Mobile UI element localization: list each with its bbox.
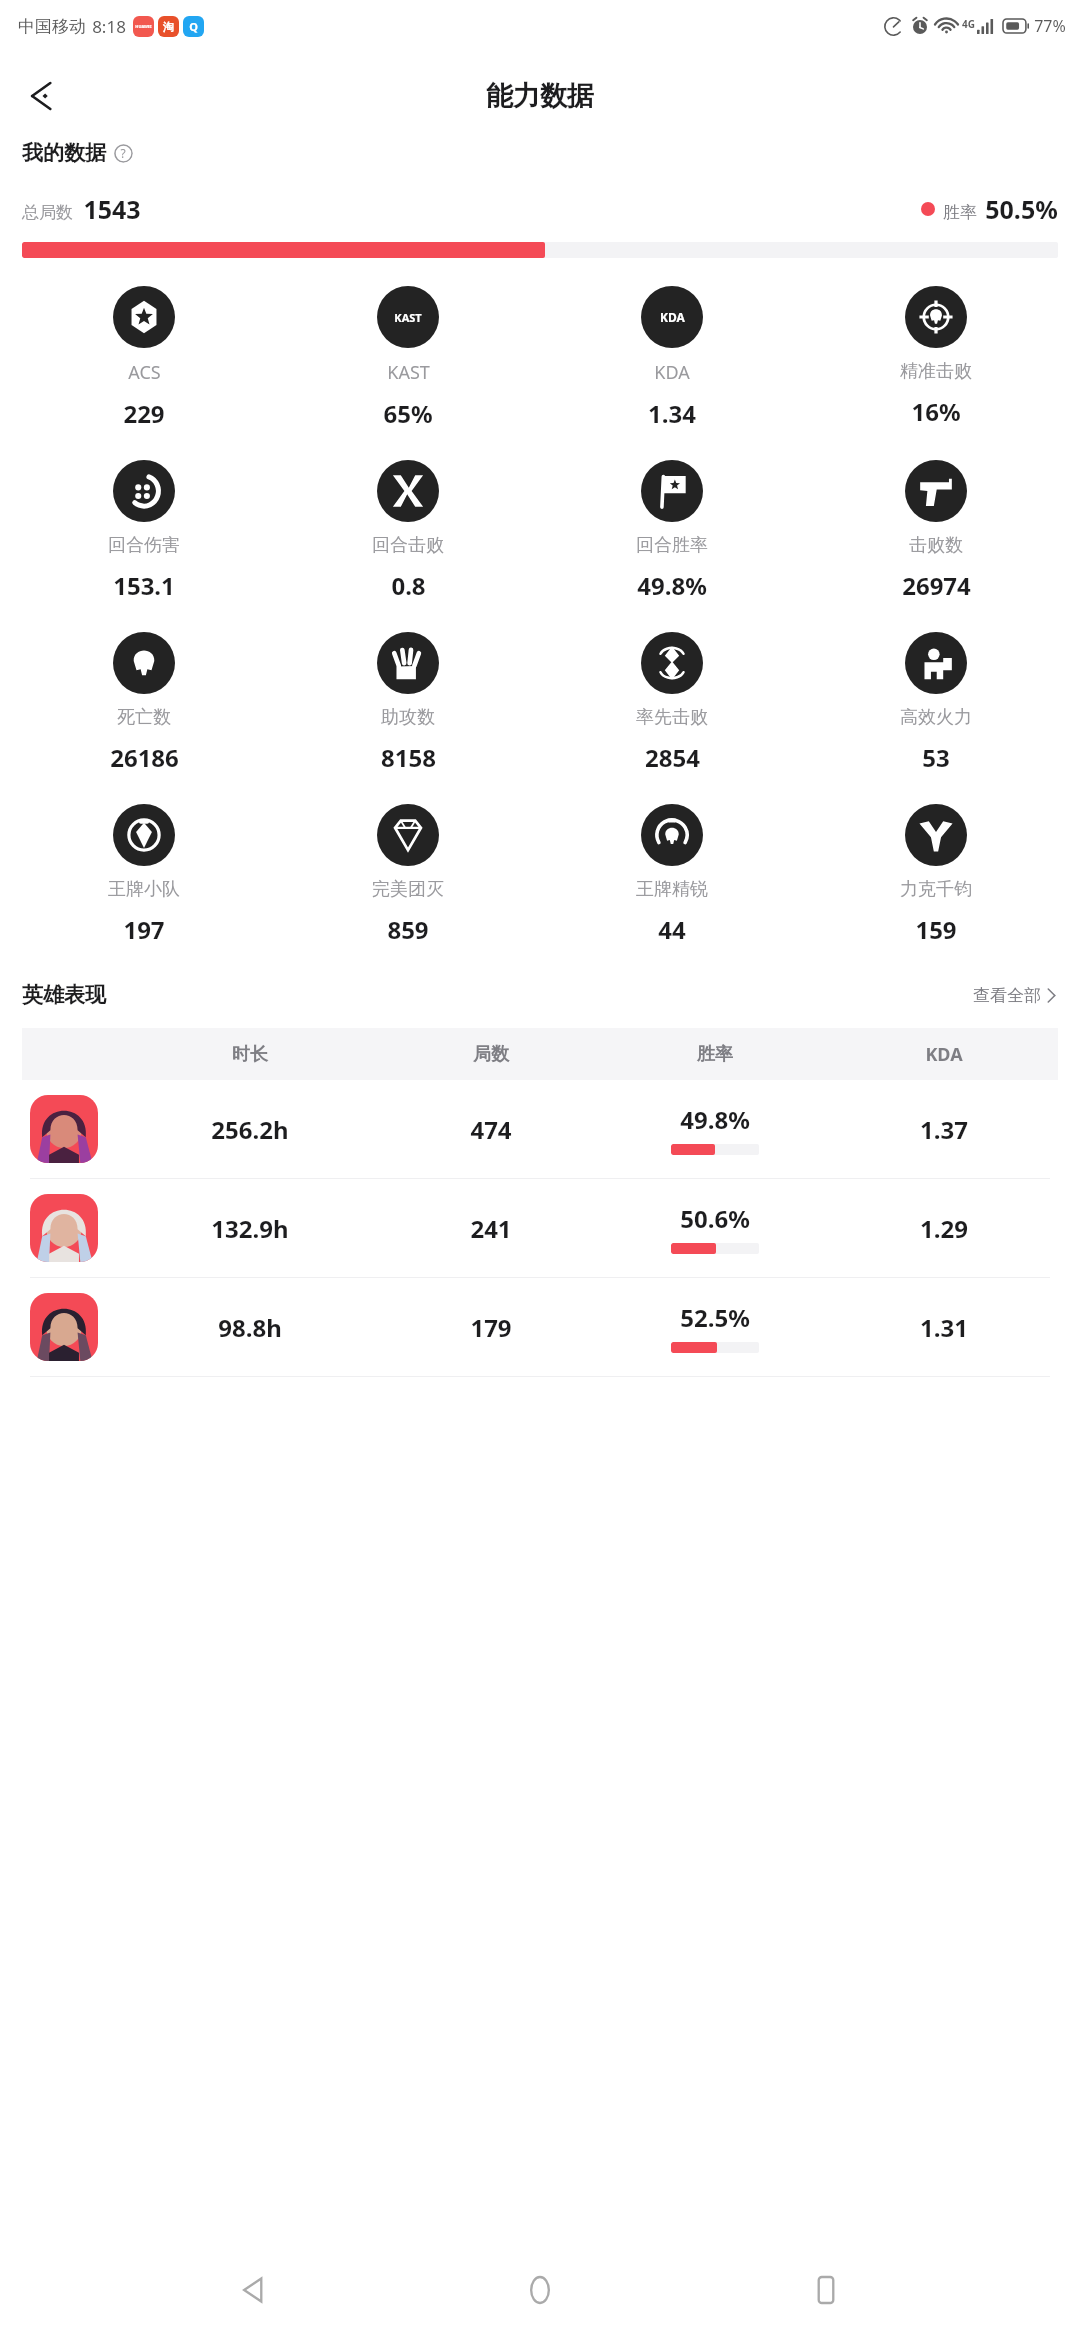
staticText: 50.6% bbox=[680, 1202, 750, 1235]
staticText: 胜率 bbox=[943, 202, 977, 223]
button[interactable]: Recents bbox=[794, 2258, 858, 2322]
staticText: 153.1 bbox=[113, 569, 175, 602]
staticText: 能力数据 bbox=[486, 79, 594, 113]
staticText: ACS bbox=[128, 360, 161, 385]
staticText: 159 bbox=[915, 913, 957, 946]
staticText: 1.34 bbox=[648, 397, 696, 430]
staticText: 王牌小队 bbox=[108, 878, 180, 901]
staticText: 132.9h bbox=[211, 1212, 289, 1245]
staticText: 229 bbox=[123, 397, 165, 430]
staticText: 1543 bbox=[83, 192, 141, 226]
staticText: 1.31 bbox=[920, 1311, 968, 1344]
staticText: 高效火力 bbox=[900, 706, 972, 729]
staticText: 16% bbox=[911, 395, 961, 428]
button[interactable]: Help bbox=[113, 143, 133, 163]
staticText: Q bbox=[189, 19, 198, 34]
staticText: 77% bbox=[1034, 15, 1066, 37]
staticText: 179 bbox=[470, 1311, 512, 1344]
button[interactable]: 回合击败 bbox=[276, 454, 540, 608]
staticText: 时长 bbox=[232, 1043, 268, 1066]
staticText: 我的数据 bbox=[22, 140, 106, 166]
staticText: 474 bbox=[470, 1113, 512, 1146]
staticText: 26974 bbox=[902, 569, 971, 602]
staticText: 49.8% bbox=[637, 569, 707, 602]
button[interactable]: 死亡数 bbox=[12, 626, 276, 780]
staticText: 859 bbox=[387, 913, 429, 946]
staticText: 1.37 bbox=[920, 1113, 968, 1146]
button[interactable]: 击败数 bbox=[804, 454, 1068, 608]
button[interactable]: 王牌精锐 bbox=[540, 798, 804, 952]
staticText: 助攻数 bbox=[381, 706, 435, 729]
staticText: 256.2h bbox=[211, 1113, 289, 1146]
staticText: ? bbox=[120, 145, 126, 161]
staticText: 中国移动 bbox=[18, 16, 86, 37]
button[interactable]: 回合伤害 bbox=[12, 454, 276, 608]
button[interactable]: Back bbox=[222, 2258, 286, 2322]
staticText: HUAWEI bbox=[135, 24, 152, 29]
staticText: 241 bbox=[470, 1212, 512, 1245]
button[interactable]: Back bbox=[14, 68, 70, 124]
staticText: 0.8 bbox=[391, 569, 426, 602]
staticText: 44 bbox=[658, 913, 686, 946]
staticText: 力克千钧 bbox=[900, 878, 972, 901]
staticText: 率先击败 bbox=[636, 706, 708, 729]
button[interactable]: 精准击败 bbox=[804, 280, 1068, 434]
button[interactable]: 助攻数 bbox=[276, 626, 540, 780]
button[interactable]: 回合胜率 bbox=[540, 454, 804, 608]
staticText: 总局数 bbox=[22, 202, 73, 223]
button[interactable]: 132.9h bbox=[22, 1179, 1058, 1277]
button[interactable]: 98.8h bbox=[22, 1278, 1058, 1376]
staticText: 回合击败 bbox=[372, 534, 444, 557]
staticText: 击败数 bbox=[909, 534, 963, 557]
staticText: 回合伤害 bbox=[108, 534, 180, 557]
button[interactable]: KDA bbox=[540, 280, 804, 436]
button[interactable]: 率先击败 bbox=[540, 626, 804, 780]
staticText: 死亡数 bbox=[117, 706, 171, 729]
staticText: 8158 bbox=[381, 741, 436, 774]
staticText: 淘 bbox=[163, 20, 174, 34]
staticText: 53 bbox=[922, 741, 950, 774]
staticText: 局数 bbox=[473, 1043, 509, 1066]
button[interactable]: 完美团灭 bbox=[276, 798, 540, 952]
staticText: KDA bbox=[660, 309, 685, 325]
button[interactable]: 256.2h bbox=[22, 1080, 1058, 1178]
staticText: 1.29 bbox=[920, 1212, 968, 1245]
button[interactable]: 王牌小队 bbox=[12, 798, 276, 952]
staticText: 2854 bbox=[645, 741, 700, 774]
staticText: 8:18 bbox=[92, 15, 126, 38]
staticText: KDA bbox=[654, 360, 690, 385]
staticText: 65% bbox=[383, 397, 433, 430]
staticText: 197 bbox=[123, 913, 165, 946]
staticText: KDA bbox=[925, 1042, 963, 1067]
button[interactable]: 高效火力 bbox=[804, 626, 1068, 780]
staticText: 26186 bbox=[110, 741, 179, 774]
staticText: 52.5% bbox=[680, 1301, 750, 1334]
staticText: 完美团灭 bbox=[372, 878, 444, 901]
staticText: 回合胜率 bbox=[636, 534, 708, 557]
staticText: KAST bbox=[394, 310, 422, 325]
staticText: 精准击败 bbox=[900, 360, 972, 383]
button[interactable]: Home bbox=[508, 2258, 572, 2322]
button[interactable]: ACS bbox=[12, 280, 276, 436]
button[interactable]: 英雄表现 bbox=[22, 982, 1058, 1008]
staticText: KAST bbox=[387, 360, 430, 385]
button[interactable]: KAST bbox=[276, 280, 540, 436]
staticText: 英雄表现 bbox=[22, 982, 106, 1008]
staticText: 查看全部 bbox=[973, 985, 1041, 1006]
button[interactable]: 力克千钧 bbox=[804, 798, 1068, 952]
staticText: 50.5% bbox=[985, 192, 1058, 226]
staticText: 王牌精锐 bbox=[636, 878, 708, 901]
staticText: 4G bbox=[962, 17, 975, 31]
staticText: 98.8h bbox=[218, 1311, 282, 1344]
staticText: 胜率 bbox=[697, 1043, 733, 1066]
staticText: 49.8% bbox=[680, 1103, 750, 1136]
